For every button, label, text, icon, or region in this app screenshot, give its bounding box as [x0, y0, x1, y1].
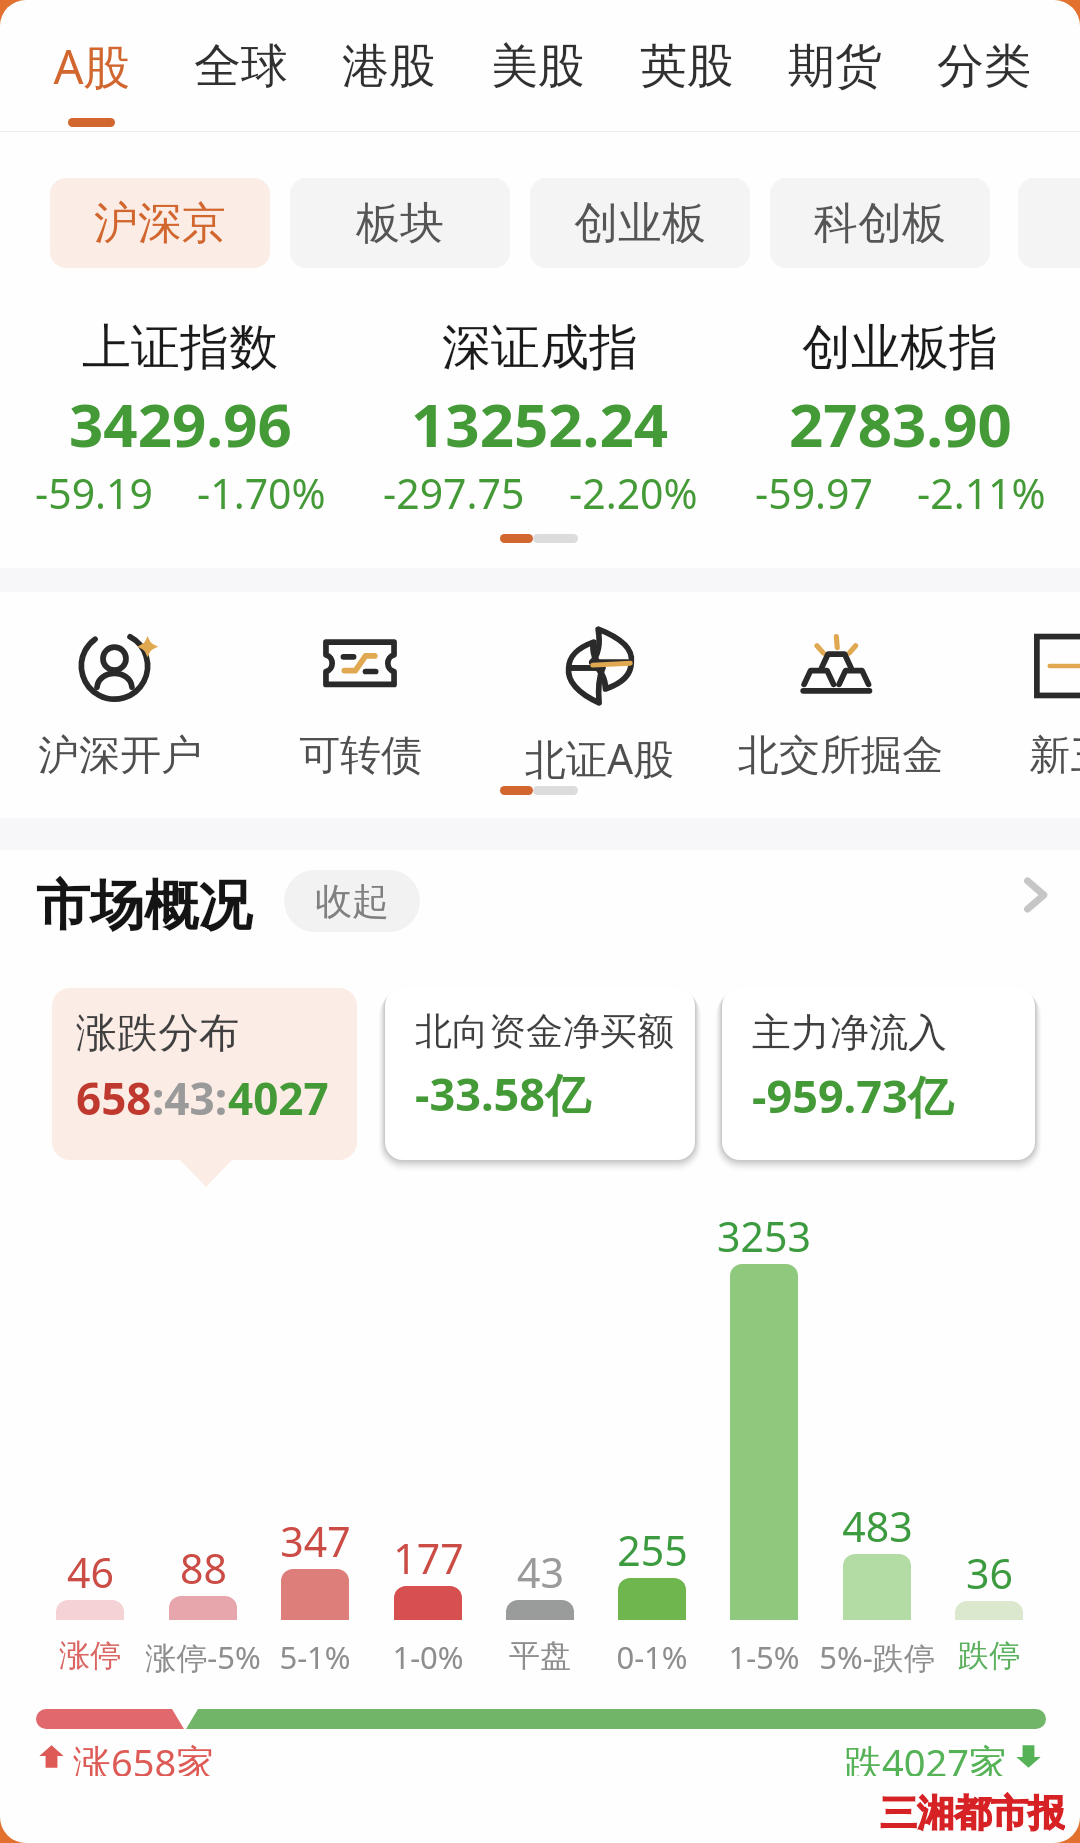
button[interactable]: 分类	[910, 0, 1058, 132]
staticText: 科创板	[814, 196, 946, 251]
button[interactable]: 期货	[761, 0, 909, 132]
staticText: 英股	[640, 37, 734, 96]
staticText: 上证指数	[82, 317, 278, 379]
staticText: 涨658家	[73, 1736, 215, 1776]
staticText: 347	[280, 1513, 351, 1569]
staticText: 46	[67, 1544, 114, 1600]
staticText: 市场概况	[36, 872, 252, 940]
button[interactable]: A股	[18, 0, 166, 132]
staticText: 5-1%	[279, 1636, 351, 1678]
staticText: -1.70%	[197, 465, 326, 521]
button[interactable]: 港股	[315, 0, 463, 132]
button[interactable]: 深证成指	[360, 305, 720, 555]
staticText: 43	[517, 1544, 564, 1600]
button[interactable]: 科创板	[770, 178, 990, 268]
button[interactable]: 英股	[613, 0, 761, 132]
staticText: 北证A股	[525, 730, 675, 786]
staticText: A股	[53, 34, 131, 98]
staticText: 跌停	[958, 1636, 1020, 1675]
staticText: -59.97	[755, 465, 873, 521]
button[interactable]: 北证A股	[480, 620, 720, 795]
staticText: 深证成指	[442, 317, 638, 379]
button[interactable]: 全球	[167, 0, 315, 132]
staticText: 177	[393, 1530, 464, 1586]
staticText: 涨停	[59, 1636, 121, 1675]
button[interactable]: 涨跌分布	[52, 988, 357, 1160]
staticText: 1-5%	[728, 1636, 800, 1678]
button[interactable]: 收起	[284, 870, 420, 932]
staticText: 涨停-5%	[145, 1636, 261, 1678]
staticText: 36	[966, 1545, 1013, 1601]
staticText: 分类	[937, 37, 1031, 96]
staticText: 沪深京	[94, 196, 226, 251]
button[interactable]: 北交所掘金	[720, 620, 960, 795]
button[interactable]: 市场概况	[36, 872, 252, 940]
button[interactable]: 创业板指	[720, 305, 1080, 555]
staticText: 483	[842, 1498, 913, 1554]
staticText: -297.75	[383, 465, 525, 521]
staticText: 5%-跌停	[819, 1636, 935, 1678]
staticText: 4027	[228, 1068, 329, 1128]
staticText: :43:	[152, 1068, 228, 1128]
staticText: 创业板	[574, 196, 706, 251]
staticText: 创业板指	[802, 317, 998, 379]
staticText: 1-0%	[392, 1636, 464, 1678]
staticText: -2.11%	[917, 465, 1046, 521]
staticText: -33.58亿	[415, 1063, 591, 1124]
staticText: 13252.24	[411, 383, 669, 465]
button[interactable]: 可转债	[240, 620, 480, 795]
staticText: 可转债	[299, 730, 422, 782]
staticText: 三湘都市报	[880, 1790, 1065, 1836]
button[interactable]: 北向资金净买额	[385, 988, 695, 1160]
staticText: 平盘	[509, 1636, 571, 1675]
staticText: 3253	[717, 1208, 811, 1264]
button[interactable]: 新三	[950, 620, 1080, 795]
staticText: 全球	[194, 37, 288, 96]
staticText: 北交所掘金	[738, 730, 943, 782]
staticText: 658	[76, 1068, 152, 1128]
staticText: 沪深开户	[38, 730, 202, 782]
staticText: -59.19	[35, 465, 153, 521]
button[interactable]: 沪深京	[50, 178, 270, 268]
button[interactable]: 美股	[464, 0, 612, 132]
staticText: -959.73亿	[752, 1065, 953, 1126]
staticText: 收起	[315, 878, 389, 925]
button[interactable]: 主力净流入	[722, 988, 1035, 1160]
button[interactable]: 沪深开户	[0, 620, 240, 795]
staticText: 期货	[788, 37, 882, 96]
staticText: 涨跌分布	[76, 1008, 240, 1060]
staticText: 北向资金净买额	[415, 1008, 674, 1055]
button[interactable]: 板块	[290, 178, 510, 268]
staticText: 255	[617, 1522, 688, 1578]
staticText: -2.20%	[569, 465, 698, 521]
button[interactable]: 创业板	[530, 178, 750, 268]
staticText: 跌4027家	[844, 1736, 1007, 1776]
staticText: 0-1%	[616, 1636, 688, 1678]
staticText: 港股	[342, 37, 436, 96]
button[interactable]: 查看更多	[1000, 860, 1070, 930]
staticText: 88	[180, 1540, 227, 1596]
staticText: 主力净流入	[752, 1008, 947, 1057]
button[interactable]: 上证指数	[0, 305, 360, 555]
staticText: 美股	[491, 37, 585, 96]
staticText: 新三	[1029, 730, 1080, 782]
staticText: 板块	[356, 196, 444, 251]
staticText: 3429.96	[69, 383, 292, 465]
staticText: 2783.90	[789, 383, 1012, 465]
